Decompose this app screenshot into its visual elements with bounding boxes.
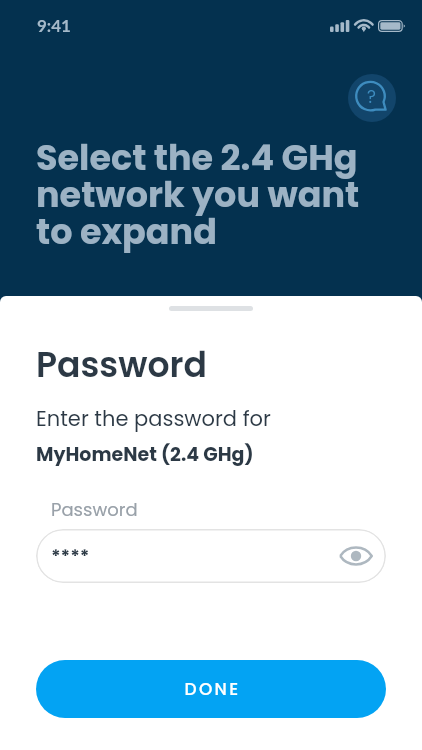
staticText: Password — [51, 497, 138, 522]
staticText: Enter the password for — [36, 404, 271, 433]
staticText: **** — [51, 543, 90, 568]
button[interactable]: DONE — [36, 660, 386, 718]
staticText: Password — [36, 341, 207, 389]
button[interactable]: Show password — [338, 538, 374, 574]
staticText: DONE — [184, 677, 241, 701]
button[interactable]: **** — [36, 529, 386, 583]
button[interactable]: Help — [348, 74, 396, 122]
staticText: Select the 2.4 GHg network you want to e… — [36, 133, 360, 256]
staticText: 9:41 — [37, 15, 71, 35]
staticText: ? — [367, 85, 376, 109]
staticText: MyHomeNet (2.4 GHg) — [36, 441, 254, 468]
